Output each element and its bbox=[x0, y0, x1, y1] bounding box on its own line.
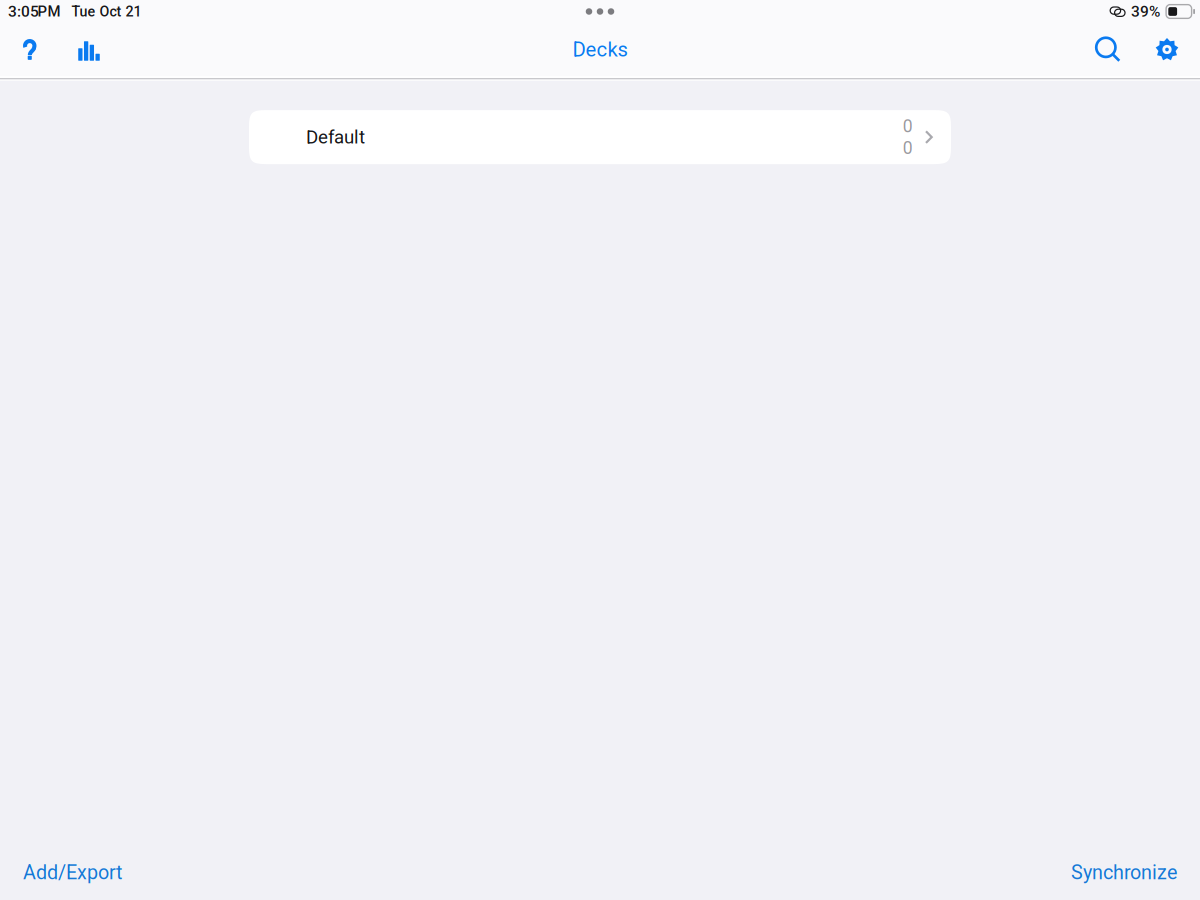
staticText: Default bbox=[306, 126, 365, 148]
button[interactable]: Settings bbox=[1145, 27, 1189, 71]
button[interactable]: Synchronize bbox=[1071, 853, 1200, 898]
staticText: 39% bbox=[1131, 2, 1160, 20]
staticText: Decks bbox=[572, 38, 627, 61]
staticText: 0 bbox=[903, 116, 913, 137]
button[interactable]: Add/Export bbox=[0, 853, 122, 898]
button[interactable]: Default bbox=[249, 110, 951, 164]
button[interactable]: Help bbox=[8, 27, 52, 71]
staticText: Add/Export bbox=[23, 861, 122, 884]
staticText: Tue Oct 21 bbox=[71, 3, 141, 20]
staticText: 3:05 bbox=[8, 2, 39, 20]
staticText: Synchronize bbox=[1071, 861, 1177, 884]
button[interactable]: Statistics bbox=[67, 26, 111, 73]
button[interactable]: Search bbox=[1086, 27, 1130, 71]
staticText: 0 bbox=[903, 138, 913, 158]
staticText: PM bbox=[37, 3, 60, 20]
